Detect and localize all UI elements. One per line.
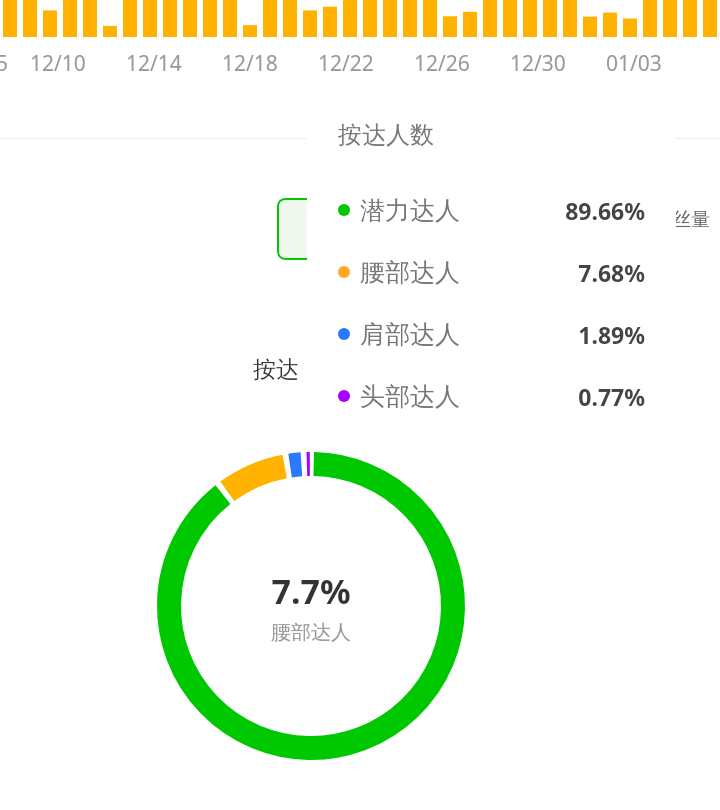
staticText: 按达人数 [338, 120, 434, 150]
staticText: 1.89% [578, 319, 645, 350]
staticText: 按达 [253, 355, 299, 384]
button[interactable] [277, 198, 397, 260]
staticText: 潜力达人 [360, 195, 460, 226]
staticText: 7.7% [271, 568, 351, 614]
staticText: 丝量 [672, 208, 710, 232]
button[interactable]: 按达人数占比环形图 [157, 452, 465, 760]
staticText: 腰部达人 [271, 620, 351, 645]
staticText: 12/26 [414, 49, 470, 78]
button[interactable]: 按达人数 [307, 88, 676, 434]
staticText: 0.77% [578, 381, 645, 412]
staticText: 12/10 [30, 49, 86, 78]
staticText: 12/22 [318, 49, 374, 78]
staticText: 01/03 [606, 49, 662, 78]
staticText: 12/18 [222, 49, 278, 78]
staticText: 5 [0, 49, 9, 78]
staticText: 12/30 [510, 49, 566, 78]
staticText: 7.68% [578, 257, 645, 288]
staticText: 肩部达人 [360, 319, 460, 350]
staticText: 12/14 [126, 49, 182, 78]
staticText: 89.66% [565, 195, 645, 226]
staticText: 头部达人 [360, 381, 460, 412]
staticText: 腰部达人 [360, 257, 460, 288]
